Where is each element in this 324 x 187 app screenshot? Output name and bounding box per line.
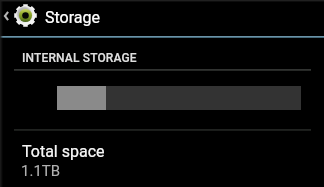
staticText: Storage xyxy=(45,8,100,27)
staticText: INTERNAL STORAGE xyxy=(22,51,137,65)
staticText: Total space xyxy=(22,142,105,161)
button[interactable]: Internal storage usage xyxy=(57,86,301,110)
button[interactable]: Navigate up to Settings xyxy=(0,0,110,36)
staticText: 1.1TB xyxy=(21,162,61,180)
button[interactable]: Total space xyxy=(0,132,324,187)
